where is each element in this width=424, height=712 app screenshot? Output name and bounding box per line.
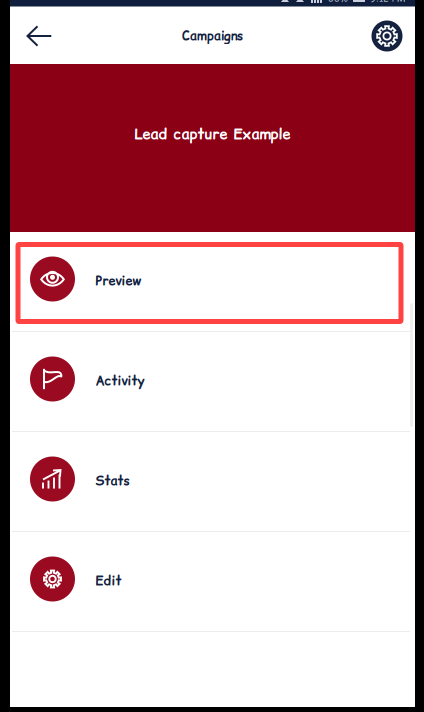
button[interactable]: Edit [10, 532, 415, 631]
button[interactable]: Settings [359, 8, 415, 64]
button[interactable]: Back [10, 8, 66, 64]
staticText: 66% [328, 0, 348, 5]
staticText: Stats [95, 472, 129, 490]
staticText: 9:12 PM [370, 0, 405, 5]
button[interactable]: Stats [10, 432, 415, 531]
staticText: Campaigns [182, 27, 243, 45]
staticText: Lead capture Example [134, 124, 290, 144]
button[interactable]: Activity [10, 332, 415, 431]
staticText: Edit [95, 572, 121, 590]
staticText: Preview [95, 272, 141, 290]
staticText: Activity [95, 372, 144, 390]
button[interactable]: Preview [10, 232, 415, 331]
